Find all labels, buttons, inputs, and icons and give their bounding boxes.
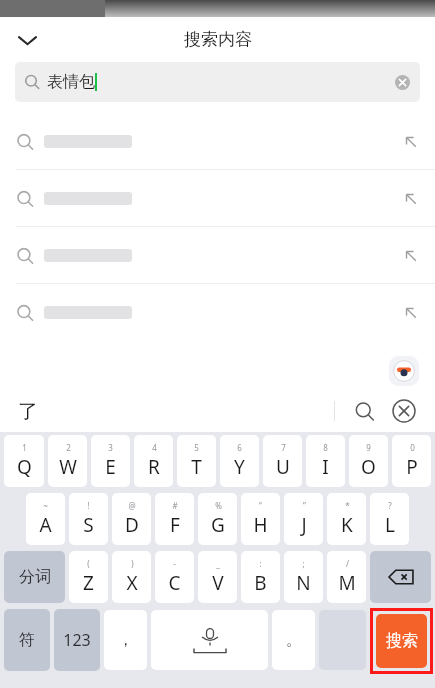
button[interactable]: 。: [272, 610, 315, 670]
button[interactable]: #: [155, 493, 194, 545]
button[interactable]: ;: [284, 551, 323, 603]
staticText: G: [211, 512, 225, 538]
staticText: Q: [17, 454, 32, 480]
staticText: J: [301, 512, 307, 538]
staticText: E: [105, 454, 116, 480]
staticText: 表情包: [47, 72, 95, 92]
staticText: 。: [286, 631, 301, 650]
button[interactable]: ~: [26, 493, 65, 545]
button[interactable]: [0, 170, 435, 227]
button[interactable]: *: [327, 493, 366, 545]
staticText: T: [191, 454, 202, 480]
staticText: H: [253, 512, 268, 538]
staticText: 符: [19, 630, 35, 650]
button[interactable]: 9: [349, 435, 388, 487]
staticText: (: [87, 558, 90, 569]
staticText: M: [338, 570, 356, 596]
button[interactable]: Space: [151, 610, 268, 670]
staticText: 123: [63, 629, 91, 651]
button[interactable]: 符: [4, 609, 50, 671]
button[interactable]: 1: [4, 435, 44, 487]
staticText: ): [131, 558, 134, 569]
staticText: 4: [152, 442, 157, 453]
staticText: _: [216, 558, 220, 569]
button[interactable]: 分词: [4, 551, 65, 603]
staticText: O: [361, 454, 376, 480]
button[interactable]: Close keyboard: [391, 398, 417, 424]
button[interactable]: [0, 284, 435, 341]
staticText: 搜索: [386, 631, 418, 651]
staticText: 7: [281, 442, 286, 453]
staticText: I: [322, 454, 329, 480]
staticText: ?: [388, 500, 392, 511]
staticText: 0: [410, 442, 415, 453]
staticText: @: [128, 500, 136, 511]
staticText: -: [173, 558, 176, 569]
staticText: U: [276, 454, 290, 480]
staticText: ，: [118, 631, 133, 650]
button[interactable]: 123: [54, 609, 100, 671]
button[interactable]: ”: [284, 493, 323, 545]
staticText: 9: [366, 442, 371, 453]
button[interactable]: 0: [392, 435, 431, 487]
button[interactable]: ?: [370, 493, 409, 545]
staticText: S: [83, 512, 94, 538]
button[interactable]: -: [155, 551, 194, 603]
staticText: A: [39, 512, 52, 538]
button[interactable]: [0, 113, 435, 170]
staticText: 2: [66, 442, 71, 453]
staticText: Y: [234, 454, 245, 480]
button[interactable]: Search candidates: [349, 396, 379, 426]
staticText: %: [215, 500, 222, 511]
button[interactable]: 2: [48, 435, 87, 487]
button[interactable]: 3: [91, 435, 130, 487]
staticText: P: [406, 454, 418, 480]
staticText: !: [87, 500, 90, 511]
staticText: D: [125, 512, 139, 538]
staticText: ”: [303, 500, 306, 511]
button[interactable]: !: [69, 493, 108, 545]
button[interactable]: Collapse: [10, 23, 44, 57]
staticText: 5: [194, 442, 199, 453]
button[interactable]: _: [198, 551, 237, 603]
button[interactable]: ，: [104, 610, 147, 670]
staticText: /: [346, 558, 349, 569]
staticText: ~: [43, 500, 48, 511]
staticText: F: [170, 512, 180, 538]
staticText: R: [148, 454, 160, 480]
staticText: 1: [22, 442, 27, 453]
button[interactable]: /: [327, 551, 366, 603]
staticText: 6: [237, 442, 242, 453]
staticText: W: [59, 454, 77, 480]
staticText: :: [259, 558, 262, 569]
staticText: 分词: [19, 567, 51, 587]
staticText: 搜索内容: [184, 29, 252, 50]
button[interactable]: (: [69, 551, 108, 603]
staticText: #: [172, 500, 178, 511]
button[interactable]: “: [241, 493, 280, 545]
button[interactable]: :: [241, 551, 280, 603]
button[interactable]: 5: [177, 435, 216, 487]
staticText: C: [168, 570, 181, 596]
button[interactable]: 表情包: [15, 62, 420, 102]
staticText: Z: [83, 570, 94, 596]
button[interactable]: Backspace: [370, 551, 431, 603]
staticText: 3: [108, 442, 113, 453]
button[interactable]: [0, 227, 435, 284]
staticText: 了: [18, 399, 38, 424]
button[interactable]: 了: [18, 399, 38, 424]
button[interactable]: Sticker: [389, 356, 419, 386]
button[interactable]: 6: [220, 435, 259, 487]
button[interactable]: 8: [306, 435, 345, 487]
staticText: L: [385, 512, 395, 538]
button[interactable]: @: [112, 493, 151, 545]
button[interactable]: 7: [263, 435, 302, 487]
staticText: N: [296, 570, 311, 596]
button[interactable]: 搜索: [376, 614, 427, 668]
button[interactable]: 4: [134, 435, 173, 487]
staticText: K: [341, 512, 353, 538]
button[interactable]: %: [198, 493, 237, 545]
staticText: “: [259, 500, 262, 511]
button[interactable]: ): [112, 551, 151, 603]
